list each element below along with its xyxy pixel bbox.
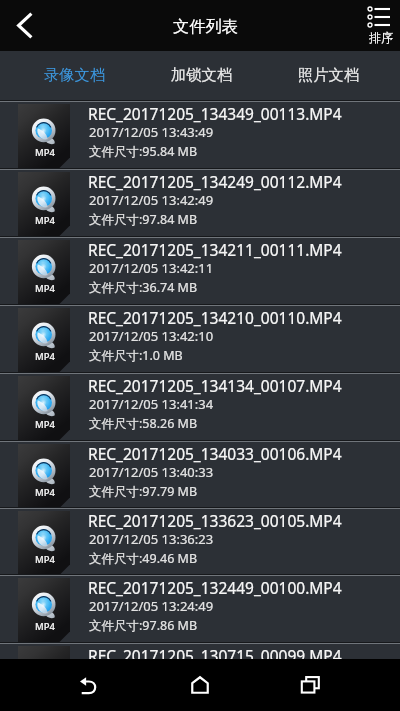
button[interactable]: 照片文档 (277, 51, 381, 100)
button[interactable]: MP4 (0, 576, 400, 642)
staticText: 文件尺寸:97.79 MB (89, 483, 198, 500)
button[interactable]: MP4 (0, 644, 400, 710)
button[interactable]: MP4 (0, 102, 400, 168)
button[interactable]: 排序 (356, 0, 400, 51)
staticText: 2017/12/05 13:36:23 (89, 530, 214, 548)
staticText: 文件尺寸:49.46 MB (89, 550, 198, 567)
staticText: REC_20171205_134211_00111.MP4 (88, 239, 342, 260)
staticText: REC_20171205_134249_00112.MP4 (88, 171, 342, 192)
staticText: 文件尺寸:90.12 MB (89, 685, 198, 702)
staticText: 加锁文档 (171, 65, 233, 84)
button[interactable]: Home (164, 659, 236, 711)
staticText: REC_20171205_134033_00106.MP4 (88, 443, 342, 464)
staticText: REC_20171205_134210_00110.MP4 (88, 307, 342, 328)
staticText: 照片文档 (298, 65, 360, 84)
staticText: 文件尺寸:1.0 MB (89, 347, 183, 364)
button[interactable]: 加锁文档 (150, 51, 254, 100)
button[interactable]: Recent apps (275, 659, 347, 711)
button[interactable]: Back (52, 659, 124, 711)
staticText: MP4 (35, 620, 55, 633)
staticText: 2017/12/05 13:40:33 (89, 463, 214, 481)
button[interactable]: MP4 (0, 238, 400, 304)
button[interactable]: MP4 (0, 509, 400, 575)
staticText: REC_20171205_132449_00100.MP4 (88, 577, 342, 598)
staticText: REC_20171205_134134_00107.MP4 (88, 375, 342, 396)
staticText: 2017/12/05 13:41:34 (89, 395, 214, 413)
staticText: MP4 (35, 418, 55, 431)
staticText: 文件尺寸:95.84 MB (89, 143, 198, 160)
staticText: 文件尺寸:58.26 MB (89, 415, 198, 432)
staticText: REC_20171205_133623_00105.MP4 (88, 510, 342, 531)
button[interactable]: MP4 (0, 306, 400, 372)
staticText: 文件尺寸:97.86 MB (89, 617, 198, 634)
staticText: 2017/12/05 13:43:49 (89, 123, 214, 141)
staticText: 2017/12/05 13:24:49 (89, 597, 214, 615)
staticText: 文件尺寸:36.74 MB (89, 279, 198, 296)
staticText: 2017/12/05 13:42:49 (89, 191, 214, 209)
button[interactable]: 录像文档 (23, 51, 127, 100)
button[interactable]: MP4 (0, 442, 400, 508)
button[interactable]: MP4 (0, 374, 400, 440)
staticText: MP4 (35, 350, 55, 363)
staticText: 2017/12/05 13:42:11 (89, 259, 214, 277)
button[interactable]: Back (0, 0, 48, 51)
staticText: 2017/12/05 13:07:15 (89, 665, 214, 683)
staticText: MP4 (35, 214, 55, 227)
staticText: REC_20171205_134349_00113.MP4 (88, 103, 342, 124)
staticText: 排序 (369, 30, 393, 45)
staticText: MP4 (35, 282, 55, 295)
button[interactable]: MP4 (0, 170, 400, 236)
staticText: 文件尺寸:97.84 MB (89, 211, 198, 228)
staticText: 文件列表 (173, 16, 238, 36)
staticText: 2017/12/05 13:42:10 (89, 327, 214, 345)
staticText: MP4 (35, 146, 55, 159)
staticText: REC_20171205_130715_00099.MP4 (88, 645, 342, 666)
staticText: MP4 (35, 486, 55, 499)
staticText: MP4 (35, 553, 55, 566)
staticText: 录像文档 (44, 65, 106, 84)
